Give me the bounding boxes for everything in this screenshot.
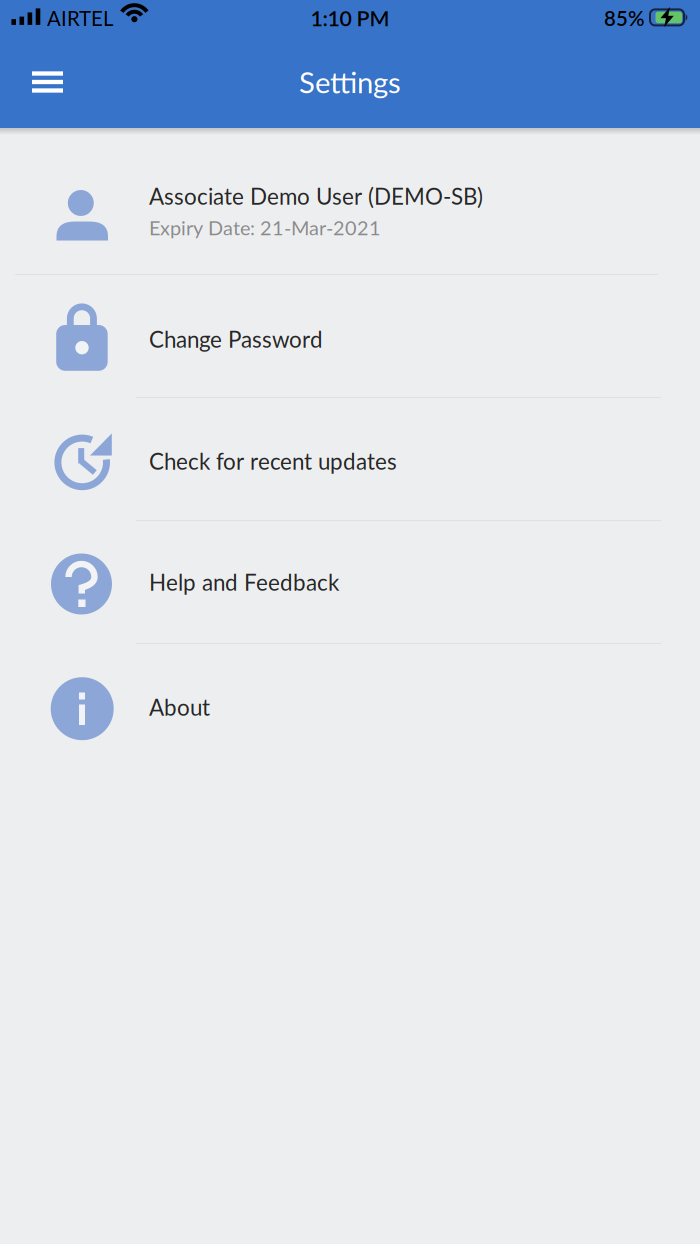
staticText: About [149,694,210,720]
staticText: Check for recent updates [149,448,397,474]
button[interactable]: Menu [0,59,75,105]
button[interactable]: Help and Feedback [0,521,700,643]
button[interactable]: Check for recent updates [0,398,700,520]
staticText: Help and Feedback [149,569,339,595]
staticText: 1:10 PM [310,5,389,31]
staticText: Change Password [149,326,323,352]
staticText: Settings [299,64,401,100]
staticText: 85% [604,6,645,30]
staticText: AIRTEL [47,6,113,30]
button[interactable]: Associate Demo User (DEMO-SB) [0,128,700,274]
staticText: Expiry Date: 21-Mar-2021 [149,215,381,239]
button[interactable]: Change Password [0,275,700,397]
button[interactable]: About [0,644,700,766]
staticText: Associate Demo User (DEMO-SB) [149,183,483,209]
